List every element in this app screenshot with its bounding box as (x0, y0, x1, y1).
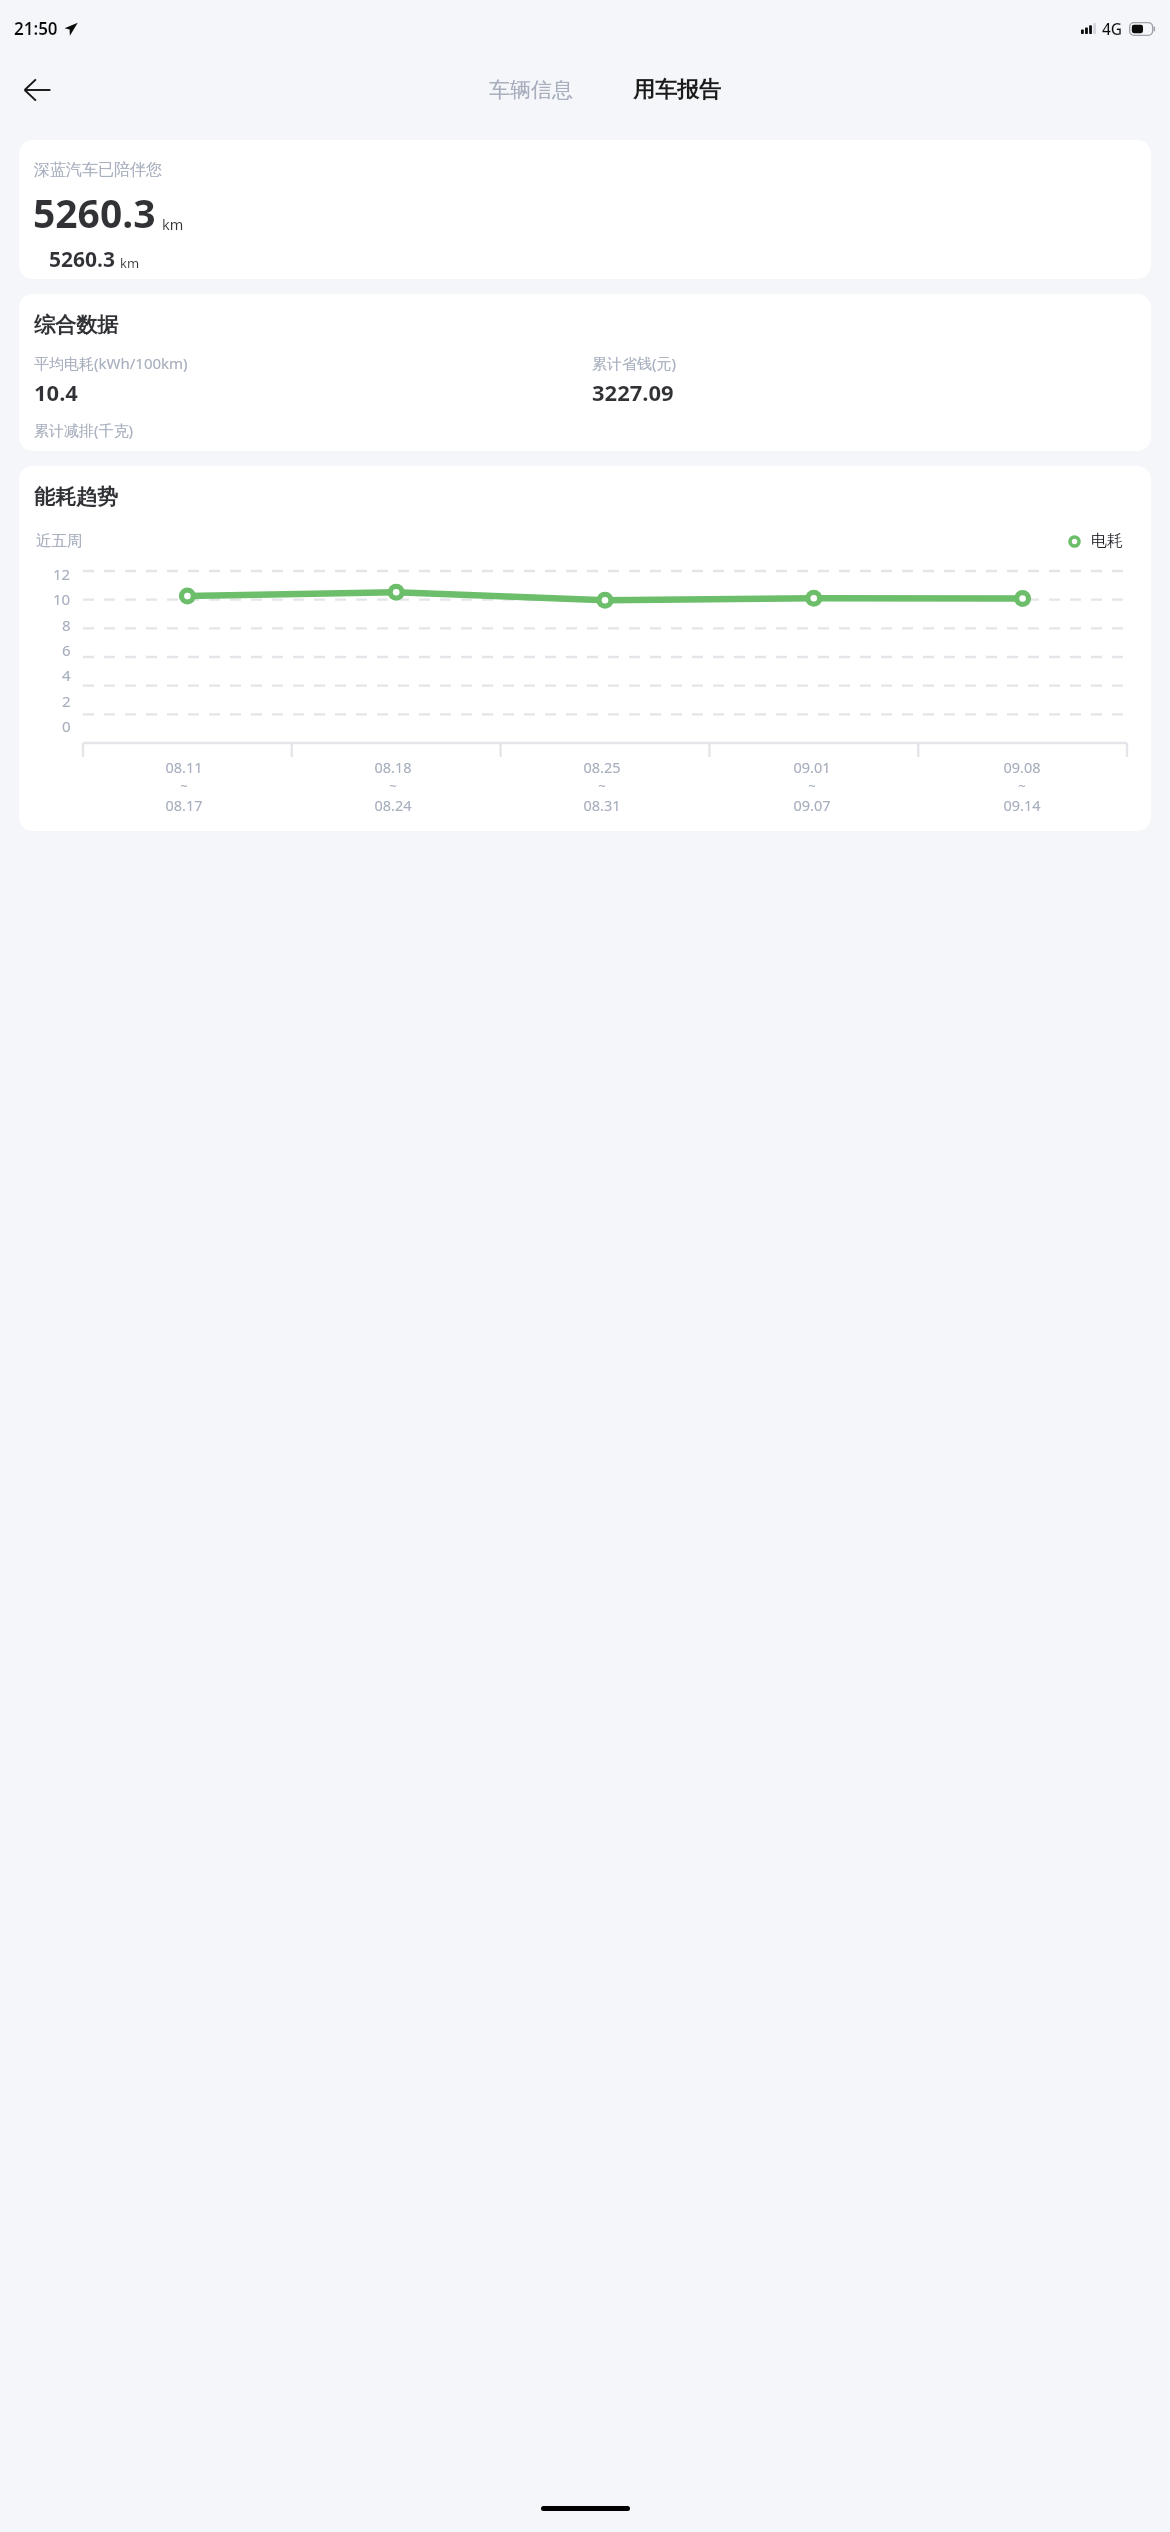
staticText: 5260.3 (33, 186, 156, 239)
staticText: 08.31 (583, 795, 621, 815)
staticText: 09.08 (1003, 757, 1041, 777)
staticText: 08.17 (165, 795, 203, 815)
staticText: ~ (180, 777, 188, 795)
staticText: km (162, 214, 184, 234)
staticText: 综合数据 (34, 312, 118, 338)
staticText: 21:50 (14, 17, 58, 40)
staticText: ~ (389, 777, 397, 795)
button[interactable]: 综合数据 (19, 294, 1151, 451)
staticText: 6 (62, 640, 71, 660)
button[interactable]: 电耗 (1064, 527, 1127, 555)
staticText: 5260.3 (49, 245, 115, 274)
button[interactable]: 车辆信息 (479, 69, 583, 111)
staticText: 09.14 (1003, 795, 1041, 815)
staticText: 12 (53, 564, 71, 584)
staticText: 用车报告 (633, 76, 721, 104)
staticText: 8 (62, 615, 71, 635)
staticText: 08.11 (165, 757, 203, 777)
staticText: 09.01 (793, 757, 831, 777)
staticText: 2 (62, 691, 71, 711)
staticText: 09.07 (793, 795, 831, 815)
staticText: 车辆信息 (489, 77, 573, 103)
staticText: 电耗 (1091, 531, 1123, 551)
button[interactable]: Back (10, 63, 64, 117)
button[interactable]: 用车报告 (623, 68, 731, 112)
staticText: ~ (1018, 777, 1026, 795)
staticText: 10.4 (34, 377, 78, 407)
button[interactable]: 深蓝汽车已陪伴您 (19, 140, 1151, 279)
staticText: ~ (808, 777, 816, 795)
staticText: 4G (1102, 18, 1123, 39)
staticText: 近五周 (36, 531, 83, 551)
staticText: 能耗趋势 (34, 484, 118, 510)
staticText: 4 (62, 665, 71, 685)
staticText: 深蓝汽车已陪伴您 (34, 160, 162, 180)
staticText: 08.18 (374, 757, 412, 777)
staticText: km (120, 254, 140, 272)
staticText: 累计减排(千克) (34, 420, 134, 440)
staticText: 10 (53, 589, 71, 609)
staticText: 累计省钱(元) (592, 353, 677, 373)
staticText: ~ (598, 777, 606, 795)
button[interactable]: 能耗趋势 (19, 466, 1151, 831)
staticText: 0 (62, 716, 71, 736)
staticText: 08.24 (374, 795, 412, 815)
staticText: 3227.09 (592, 377, 674, 407)
staticText: 08.25 (583, 757, 621, 777)
staticText: 平均电耗(kWh/100km) (34, 353, 188, 373)
